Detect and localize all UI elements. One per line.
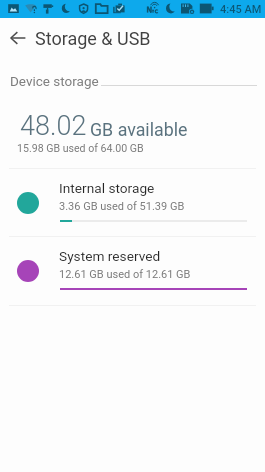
staticText: System reserved (59, 248, 161, 264)
staticText: 48.02 (20, 110, 87, 142)
button[interactable]: Navigate up (2, 22, 34, 54)
staticText: 15.98 GB used of 64.00 GB (17, 142, 144, 154)
staticText: 4:45 AM (220, 3, 262, 16)
staticText: Device storage (10, 73, 99, 89)
staticText: 3.36 GB used of 51.39 GB (59, 200, 185, 213)
staticText: Internal storage (59, 180, 155, 196)
button[interactable]: System reserved (0, 237, 265, 305)
staticText: Storage & USB (35, 28, 151, 49)
staticText: 12.61 GB used of 12.61 GB (59, 268, 191, 281)
staticText: GB available (90, 119, 188, 140)
button[interactable]: Internal storage (0, 169, 265, 237)
